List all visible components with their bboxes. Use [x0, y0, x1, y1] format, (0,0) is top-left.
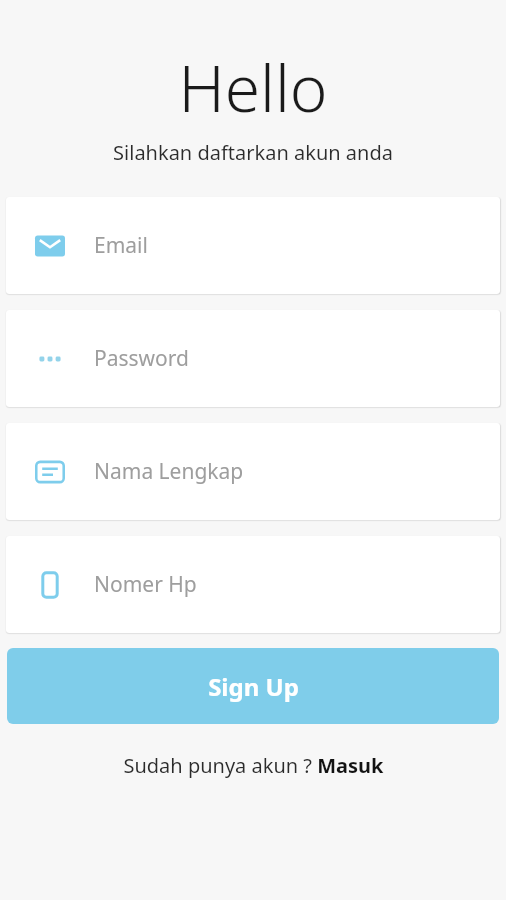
staticText: Sign Up [208, 670, 299, 703]
button[interactable]: Sudah punya akun ? Masuk [117, 750, 390, 781]
button[interactable]: Full name [6, 423, 500, 520]
button[interactable]: Password [6, 310, 500, 407]
staticText: Password [94, 344, 189, 373]
staticText: Nomer Hp [94, 570, 197, 599]
button[interactable]: Email [6, 197, 500, 294]
other: Full name [35, 457, 65, 487]
button[interactable]: Sign Up [7, 648, 499, 724]
staticText: Silahkan daftarkan akun anda [113, 139, 393, 166]
staticText: Sudah punya akun ? Masuk [123, 752, 384, 779]
other: Phone number [35, 570, 65, 600]
staticText: Hello [178, 44, 328, 131]
other: Email [35, 231, 65, 261]
staticText: Email [94, 231, 148, 260]
other: Password [35, 344, 65, 374]
staticText: Nama Lengkap [94, 457, 244, 486]
button[interactable]: Phone number [6, 536, 500, 633]
